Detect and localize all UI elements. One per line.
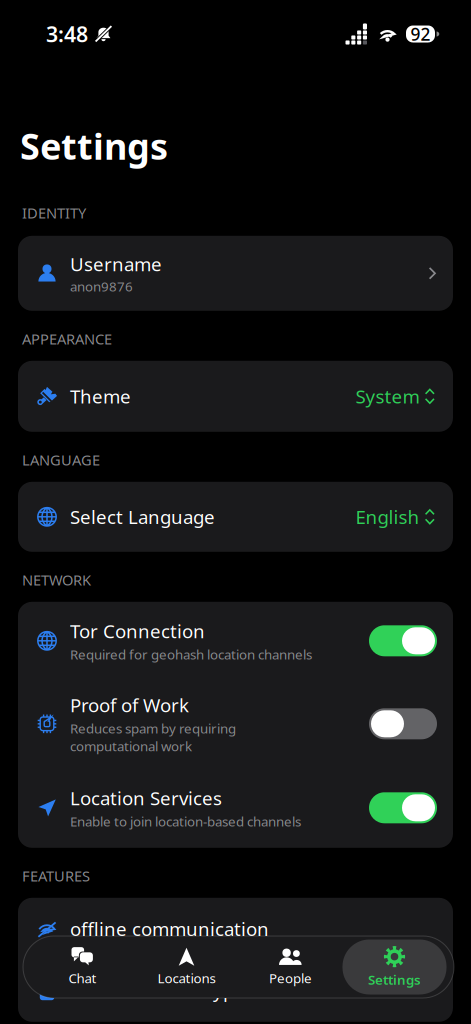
staticText: FEATURES: [22, 866, 90, 886]
button[interactable]: Chat: [30, 939, 134, 994]
button[interactable]: Locations: [134, 939, 238, 994]
staticText: English: [356, 504, 420, 529]
staticText: Required for geohash location channels: [70, 645, 312, 663]
staticText: People: [269, 969, 312, 987]
staticText: Select Language: [70, 504, 215, 529]
button[interactable]: Location Services: [18, 768, 453, 848]
staticText: Proof of Work: [70, 693, 189, 717]
button[interactable]: Proof of Work: [18, 680, 453, 768]
staticText: Username: [70, 252, 162, 276]
button[interactable]: Settings: [342, 939, 446, 994]
staticText: 92: [410, 22, 430, 45]
staticText: NETWORK: [22, 570, 91, 590]
staticText: Theme: [70, 384, 131, 409]
staticText: Enable to join location-based channels: [70, 812, 301, 830]
staticText: end-to-end encryption: [70, 978, 269, 1003]
staticText: Reduces spam by requiring computational …: [70, 719, 236, 755]
staticText: Settings: [368, 971, 421, 988]
button[interactable]: Tor Connection: [18, 602, 453, 680]
staticText: anon9876: [70, 277, 133, 295]
staticText: APPEARANCE: [22, 329, 112, 349]
staticText: Chat: [68, 969, 96, 987]
button[interactable]: People: [238, 939, 342, 994]
button[interactable]: Select Language: [18, 482, 453, 552]
staticText: LANGUAGE: [22, 450, 100, 470]
button[interactable]: Username: [18, 236, 453, 311]
staticText: System: [356, 384, 420, 409]
staticText: Location Services: [70, 786, 222, 810]
staticText: Locations: [157, 969, 215, 987]
staticText: offline communication: [70, 916, 269, 941]
button[interactable]: Theme: [18, 361, 453, 432]
staticText: Settings: [20, 122, 168, 170]
staticText: IDENTITY: [22, 203, 86, 223]
staticText: Tor Connection: [70, 619, 205, 643]
staticText: 3:48: [46, 20, 88, 48]
